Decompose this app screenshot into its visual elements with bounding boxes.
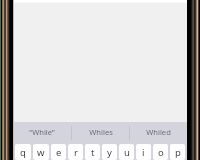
staticText: o xyxy=(158,146,164,159)
button[interactable]: Whiles xyxy=(72,122,129,144)
button[interactable]: e xyxy=(51,144,66,160)
button[interactable]: p xyxy=(170,144,185,160)
button[interactable]: u xyxy=(119,144,134,160)
staticText: Whiles xyxy=(89,127,113,137)
button[interactable]: i xyxy=(136,144,151,160)
button[interactable]: r xyxy=(68,144,83,160)
staticText: q xyxy=(20,146,26,159)
button[interactable]: y xyxy=(102,144,117,160)
staticText: u xyxy=(124,146,130,159)
button[interactable]: “While” xyxy=(13,122,71,144)
staticText: p xyxy=(175,146,181,159)
staticText: t xyxy=(91,146,95,159)
staticText: i xyxy=(142,146,145,159)
button[interactable]: o xyxy=(153,144,168,160)
staticText: “While” xyxy=(29,127,55,137)
button[interactable]: t xyxy=(85,144,100,160)
staticText: r xyxy=(74,146,78,159)
button[interactable]: w xyxy=(33,144,49,160)
staticText: Whiled xyxy=(146,127,171,137)
staticText: y xyxy=(107,146,112,159)
button[interactable]: q xyxy=(15,144,31,160)
staticText: w xyxy=(37,146,45,159)
button[interactable]: Whiled xyxy=(130,122,187,144)
staticText: e xyxy=(56,146,62,159)
